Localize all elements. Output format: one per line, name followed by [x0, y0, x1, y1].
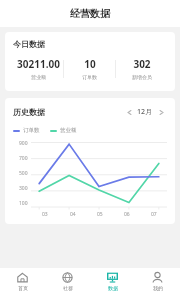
staticText: 30211.00	[17, 57, 60, 71]
staticText: 经营数据	[70, 7, 110, 20]
staticText: 数据	[108, 285, 118, 291]
other: 数据	[107, 272, 118, 283]
button[interactable]: 我的	[135, 268, 180, 300]
other: 首页	[17, 272, 28, 283]
staticText: 302	[133, 57, 151, 71]
button[interactable]: 首页	[0, 268, 45, 300]
staticText: 历史数据	[13, 107, 45, 117]
staticText: 首页	[18, 285, 28, 291]
button[interactable]: 今日数据	[5, 32, 175, 91]
staticText: 10	[84, 57, 96, 71]
staticText: 300	[19, 185, 28, 192]
staticText: 700	[19, 155, 28, 162]
staticText: 05	[97, 211, 103, 218]
button[interactable]: 数据	[90, 268, 135, 300]
staticText: 营业额	[31, 74, 46, 80]
staticText: 100	[19, 200, 28, 207]
button[interactable]: 上一月	[123, 106, 135, 118]
other: 我的	[152, 272, 163, 283]
staticText: 新增会员	[132, 74, 152, 80]
button[interactable]: 12月	[137, 107, 153, 117]
staticText: 我的	[153, 285, 163, 291]
staticText: 今日数据	[13, 39, 45, 49]
staticText: 03	[42, 211, 48, 218]
staticText: 订单数	[23, 127, 40, 134]
staticText: 订单数	[82, 74, 97, 80]
staticText: 07	[151, 211, 157, 218]
staticText: 04	[70, 211, 76, 218]
button[interactable]: 社群	[45, 268, 90, 300]
other: 社群	[62, 272, 73, 283]
staticText: 500	[19, 170, 28, 177]
button[interactable]: 下一月	[155, 106, 167, 118]
staticText: 06	[124, 211, 130, 218]
staticText: 营业额	[60, 127, 77, 134]
staticText: 900	[19, 140, 28, 147]
staticText: 社群	[63, 285, 73, 291]
